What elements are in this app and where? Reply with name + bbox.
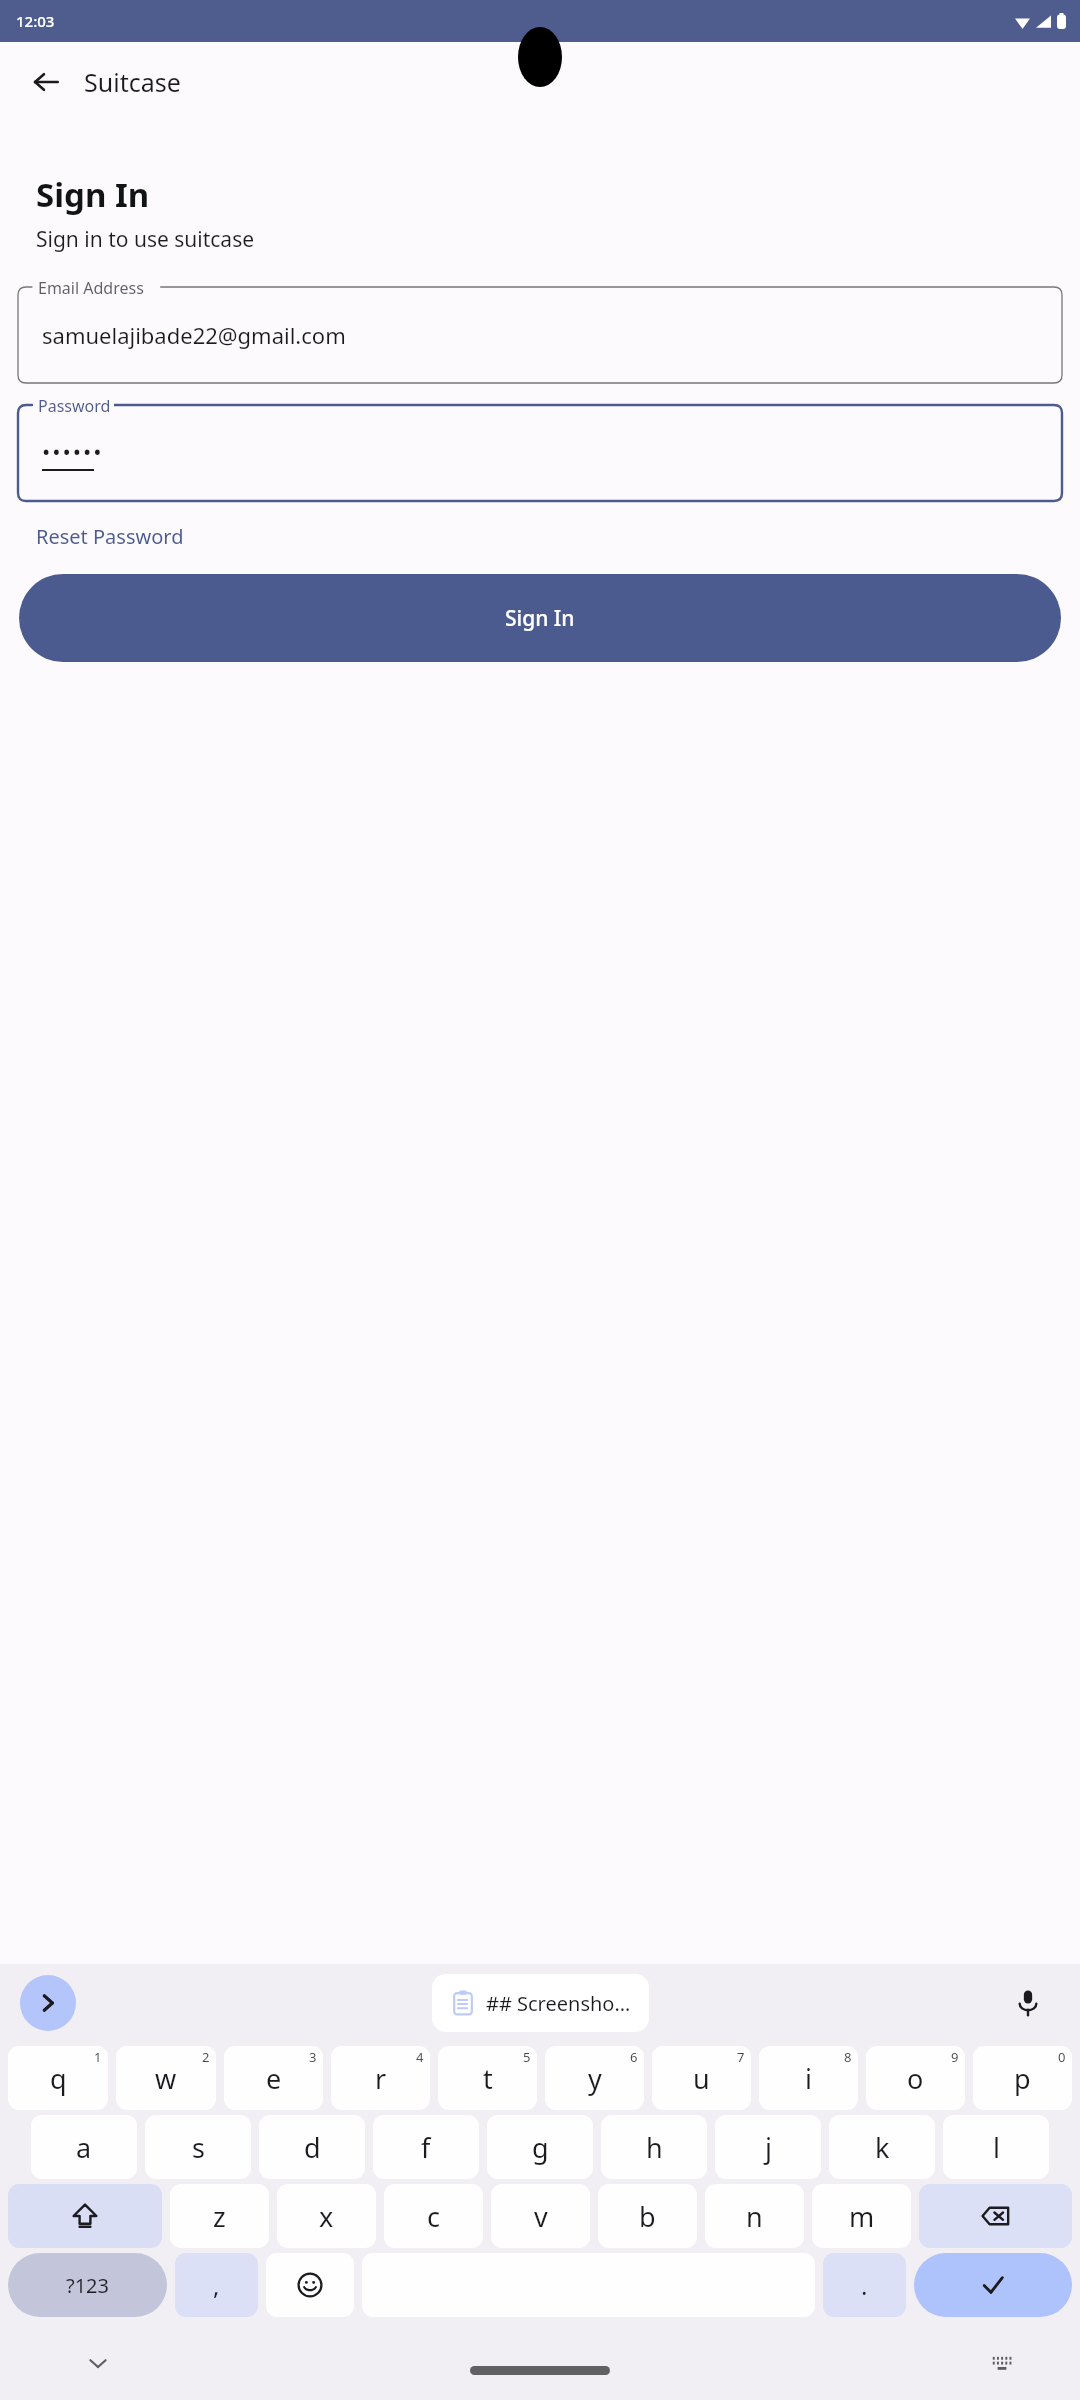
button[interactable]: Comma	[175, 2253, 258, 2317]
staticText: a	[76, 2129, 92, 2166]
button[interactable]: w	[116, 2046, 216, 2110]
staticText: u	[693, 2060, 710, 2097]
staticText: j	[765, 2129, 772, 2166]
staticText: 3	[309, 2048, 317, 2066]
button[interactable]: j	[715, 2115, 821, 2179]
button[interactable]: Period	[823, 2253, 906, 2317]
button[interactable]: Change keyboard	[980, 2341, 1024, 2385]
staticText: .	[861, 2269, 868, 2302]
staticText: l	[993, 2129, 1000, 2166]
button[interactable]: q	[8, 2046, 108, 2110]
button[interactable]: h	[601, 2115, 707, 2179]
staticText: 4	[416, 2048, 424, 2066]
staticText: Suitcase	[84, 65, 181, 99]
button[interactable]: Voice input	[1002, 1977, 1054, 2029]
button[interactable]: k	[829, 2115, 935, 2179]
staticText: 8	[844, 2048, 852, 2066]
button[interactable]: Sign In	[19, 574, 1061, 662]
button[interactable]: n	[705, 2184, 804, 2248]
button[interactable]: a	[31, 2115, 137, 2179]
button[interactable]: r	[331, 2046, 430, 2110]
button[interactable]: Enter	[914, 2253, 1072, 2317]
button[interactable]: ?123	[8, 2253, 167, 2317]
button[interactable]: y	[545, 2046, 644, 2110]
staticText: q	[50, 2060, 67, 2097]
staticText: b	[639, 2198, 656, 2235]
staticText: g	[532, 2129, 549, 2166]
button[interactable]: f	[373, 2115, 479, 2179]
staticText: ••••••	[42, 436, 104, 466]
staticText: Sign in to use suitcase	[36, 225, 255, 254]
button[interactable]: e	[224, 2046, 323, 2110]
staticText: y	[588, 2060, 602, 2097]
button[interactable]: u	[652, 2046, 751, 2110]
button[interactable]: Password	[18, 405, 1062, 501]
staticText: ## Screensho…	[486, 1990, 631, 2017]
staticText: Email Address	[38, 277, 144, 299]
staticText: x	[319, 2198, 334, 2235]
staticText: z	[213, 2198, 226, 2235]
button[interactable]: Hide keyboard	[76, 2341, 120, 2385]
button[interactable]: Emoji	[266, 2253, 354, 2317]
staticText: w	[155, 2060, 177, 2097]
staticText: d	[304, 2129, 321, 2166]
button[interactable]: Back	[22, 58, 70, 106]
staticText: ,	[213, 2269, 220, 2302]
button[interactable]: ## Screensho…	[432, 1974, 649, 2032]
staticText: h	[646, 2129, 663, 2166]
staticText: 5	[523, 2048, 531, 2066]
button[interactable]: l	[943, 2115, 1049, 2179]
staticText: k	[875, 2129, 890, 2166]
staticText: ?123	[66, 2272, 109, 2299]
staticText: s	[192, 2129, 205, 2166]
button[interactable]: i	[759, 2046, 858, 2110]
staticText: Password	[38, 395, 111, 417]
staticText: v	[534, 2198, 548, 2235]
button[interactable]: g	[487, 2115, 593, 2179]
staticText: e	[266, 2060, 282, 2097]
button[interactable]: s	[145, 2115, 251, 2179]
button[interactable]: o	[866, 2046, 965, 2110]
staticText: Sign In	[505, 604, 575, 633]
button[interactable]: m	[812, 2184, 911, 2248]
staticText: 9	[951, 2048, 959, 2066]
staticText: r	[375, 2060, 387, 2097]
button[interactable]: Shift	[8, 2184, 162, 2248]
staticText: c	[427, 2198, 440, 2235]
staticText: i	[805, 2060, 812, 2097]
staticText: 6	[630, 2048, 638, 2066]
staticText: f	[421, 2129, 431, 2166]
button[interactable]: x	[277, 2184, 376, 2248]
staticText: m	[849, 2198, 875, 2235]
button[interactable]: Email Address	[18, 287, 1062, 383]
button[interactable]: p	[973, 2046, 1072, 2110]
staticText: 12:03	[16, 11, 55, 31]
staticText: samuelajibade22@gmail.com	[42, 320, 346, 350]
button[interactable]: c	[384, 2184, 483, 2248]
button[interactable]: v	[491, 2184, 590, 2248]
staticText: t	[483, 2060, 493, 2097]
button[interactable]: z	[170, 2184, 269, 2248]
button[interactable]: d	[259, 2115, 365, 2179]
staticText: Reset Password	[36, 523, 184, 550]
button[interactable]: Expand toolbar	[20, 1975, 76, 2031]
staticText: n	[746, 2198, 763, 2235]
staticText: 1	[94, 2048, 102, 2066]
staticText: o	[907, 2060, 924, 2097]
staticText: 2	[202, 2048, 210, 2066]
button[interactable]: Backspace	[919, 2184, 1072, 2248]
staticText: Sign In	[36, 172, 150, 217]
button[interactable]: b	[598, 2184, 697, 2248]
button[interactable]: t	[438, 2046, 537, 2110]
staticText: 0	[1058, 2048, 1066, 2066]
staticText: 7	[737, 2048, 745, 2066]
staticText: p	[1014, 2060, 1031, 2097]
button[interactable]: Reset Password	[26, 517, 194, 556]
